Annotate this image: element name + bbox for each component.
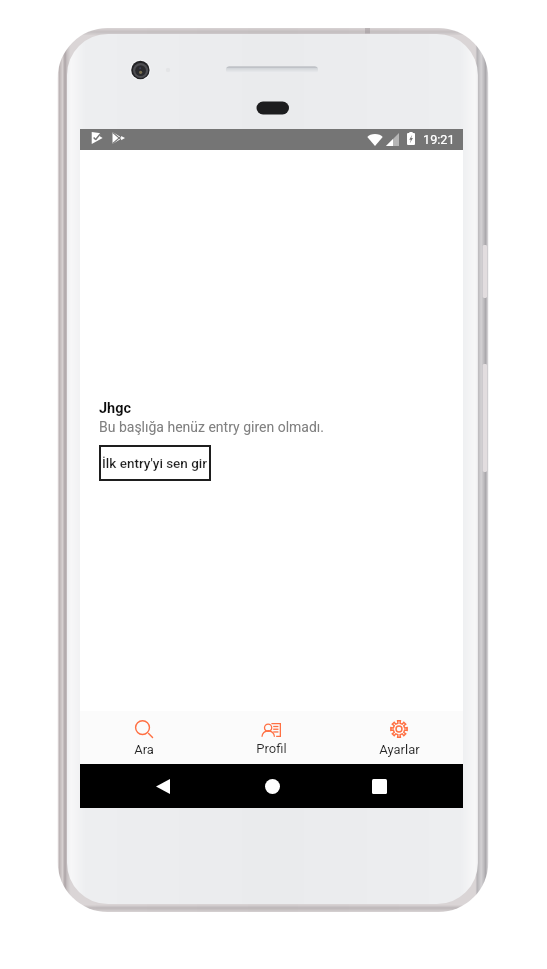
button[interactable]: Back (143, 766, 183, 806)
button[interactable]: Profil (207, 711, 335, 764)
staticText: Ayarlar (379, 742, 420, 757)
button[interactable]: Ayarlar (335, 711, 463, 764)
staticText: 19:21 (423, 132, 455, 147)
staticText: İlk entry'yi sen gir (102, 455, 208, 471)
button[interactable]: İlk entry'yi sen gir (99, 445, 211, 481)
staticText: Ara (134, 742, 154, 757)
staticText: Bu başlığa henüz entry giren olmadı. (99, 419, 324, 435)
staticText: Profil (256, 741, 287, 756)
button[interactable]: Ara (80, 711, 207, 764)
staticText: Jhgc (99, 400, 132, 417)
button[interactable]: Home (252, 766, 292, 806)
button[interactable]: Recents (359, 766, 399, 806)
